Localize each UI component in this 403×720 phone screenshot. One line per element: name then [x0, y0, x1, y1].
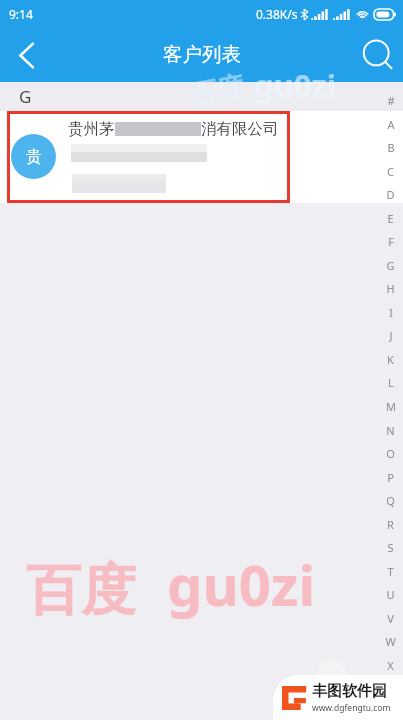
staticText: K — [387, 352, 394, 367]
button[interactable]: Q — [378, 492, 403, 509]
button[interactable]: P — [378, 469, 403, 486]
button[interactable]: V — [378, 610, 403, 627]
staticText: 消有限公司 — [201, 119, 279, 139]
button[interactable]: # — [378, 92, 403, 109]
button[interactable]: D — [378, 186, 403, 203]
button[interactable]: C — [378, 163, 403, 180]
staticText: 贵州茅 — [68, 119, 115, 139]
button[interactable]: X — [378, 657, 403, 674]
staticText: D — [386, 187, 395, 202]
staticText: W — [385, 634, 396, 649]
staticText: G — [386, 258, 395, 273]
staticText: gu0zi — [167, 546, 316, 622]
staticText: N — [386, 423, 395, 438]
staticText: H — [386, 281, 395, 296]
button[interactable]: S — [378, 539, 403, 556]
button[interactable]: J — [378, 327, 403, 344]
staticText: 百度 — [187, 70, 247, 112]
button[interactable]: E — [378, 210, 403, 227]
button[interactable]: N — [378, 422, 403, 439]
button[interactable]: K — [378, 351, 403, 368]
staticText: Z — [387, 705, 394, 720]
button[interactable]: B — [378, 139, 403, 156]
staticText: J — [389, 328, 393, 343]
staticText: 丰图软件园 — [312, 682, 387, 701]
staticText: 0.38K/s — [256, 6, 298, 22]
button[interactable]: M — [378, 398, 403, 415]
staticText: gu0zi — [254, 64, 337, 106]
staticText: www.dgfengtu.com — [312, 702, 391, 714]
staticText: # — [387, 93, 395, 108]
button[interactable]: A — [378, 116, 403, 133]
staticText: P — [387, 470, 394, 485]
staticText: I — [389, 305, 393, 320]
button[interactable]: Back — [0, 28, 52, 82]
staticText: A — [387, 117, 395, 132]
button[interactable]: Z — [378, 704, 403, 720]
staticText: G — [19, 85, 32, 108]
staticText: X — [387, 658, 394, 673]
staticText: O — [386, 446, 395, 461]
button[interactable]: H — [378, 280, 403, 297]
staticText: 9:14 — [9, 6, 33, 22]
button[interactable]: 贵 — [0, 111, 403, 203]
staticText: S — [387, 540, 394, 555]
staticText: M — [386, 399, 396, 414]
button[interactable]: L — [378, 374, 403, 391]
staticText: 贵 — [26, 147, 42, 167]
button[interactable]: W — [378, 633, 403, 650]
button[interactable]: Search — [357, 28, 403, 82]
staticText: T — [387, 564, 394, 579]
staticText: 百度 — [26, 556, 136, 625]
staticText: Q — [386, 493, 395, 508]
staticText: 客户列表 — [163, 42, 241, 67]
button[interactable]: F — [378, 233, 403, 250]
button[interactable]: U — [378, 586, 403, 603]
staticText: C — [387, 164, 394, 179]
button[interactable]: Y — [378, 680, 403, 697]
button[interactable]: G — [378, 257, 403, 274]
staticText: L — [388, 375, 394, 390]
staticText: E — [387, 211, 394, 226]
button[interactable]: R — [378, 516, 403, 533]
button[interactable]: T — [378, 563, 403, 580]
staticText: B — [387, 140, 395, 155]
staticText: R — [387, 517, 394, 532]
staticText: F — [388, 234, 394, 249]
staticText: U — [386, 587, 395, 602]
button[interactable]: I — [378, 304, 403, 321]
staticText: V — [387, 611, 394, 626]
button[interactable]: Add — [318, 660, 346, 688]
button[interactable]: O — [378, 445, 403, 462]
